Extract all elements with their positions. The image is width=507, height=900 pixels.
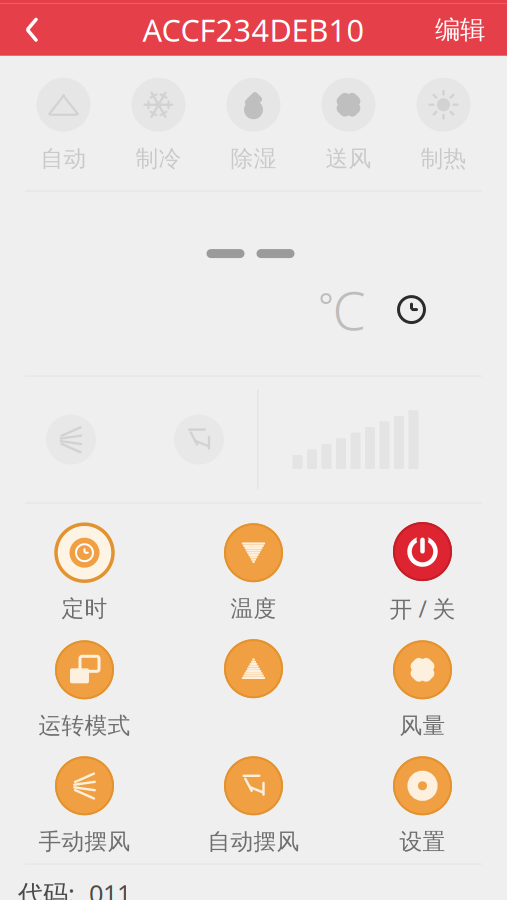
button[interactable]: 除湿 bbox=[206, 74, 301, 176]
staticText: 代码: 011 bbox=[18, 877, 131, 900]
button[interactable]: Temperature down bbox=[169, 638, 338, 741]
button[interactable]: 制冷 bbox=[111, 74, 206, 176]
staticText: 手动摆风 bbox=[38, 828, 130, 856]
staticText: ACCF234DEB10 bbox=[142, 9, 364, 50]
button[interactable]: 开 / 关 bbox=[338, 521, 507, 624]
button[interactable]: Back bbox=[10, 6, 54, 54]
staticText: 设置 bbox=[399, 828, 445, 856]
staticText: 自动摆风 bbox=[207, 828, 299, 856]
button[interactable]: Timer bbox=[391, 290, 431, 330]
button[interactable]: 制热 bbox=[396, 74, 491, 176]
staticText: 制冷 bbox=[135, 145, 181, 172]
staticText: 送风 bbox=[325, 145, 371, 172]
staticText: 编辑 bbox=[435, 14, 485, 45]
staticText: 开 / 关 bbox=[389, 594, 455, 624]
button[interactable]: 温度 bbox=[169, 522, 338, 622]
button[interactable]: 运转模式 bbox=[0, 639, 169, 740]
staticText: 除湿 bbox=[230, 145, 276, 172]
button[interactable]: 设置 bbox=[338, 755, 507, 856]
staticText: 制热 bbox=[420, 145, 466, 172]
button[interactable]: 定时 bbox=[0, 522, 169, 622]
button[interactable]: 送风 bbox=[301, 74, 396, 176]
staticText: 自动 bbox=[40, 145, 86, 172]
button[interactable]: 编辑 bbox=[423, 6, 497, 54]
button[interactable]: 风量 bbox=[338, 639, 507, 740]
staticText: 定时 bbox=[61, 595, 107, 622]
staticText: 运转模式 bbox=[38, 712, 130, 740]
button[interactable]: 手动摆风 bbox=[0, 755, 169, 856]
staticText: C bbox=[332, 274, 365, 345]
button[interactable]: Manual swing bbox=[36, 405, 106, 475]
staticText: 温度 bbox=[230, 595, 276, 622]
button[interactable]: Auto swing bbox=[164, 405, 234, 475]
staticText: 风量 bbox=[399, 712, 445, 740]
button[interactable]: 自动摆风 bbox=[169, 755, 338, 856]
button[interactable]: 自动 bbox=[16, 74, 111, 176]
